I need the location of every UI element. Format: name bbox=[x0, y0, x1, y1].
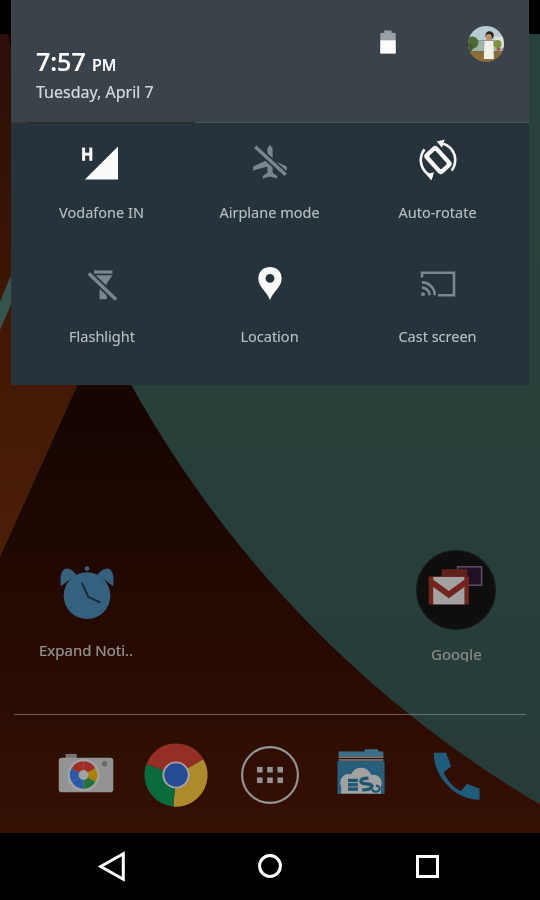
staticText: Airplane mode bbox=[219, 202, 320, 222]
staticText: 7:57 bbox=[36, 44, 86, 78]
staticText: Flashlight bbox=[69, 326, 135, 346]
button[interactable]: Location bbox=[185, 247, 353, 371]
button[interactable]: Back bbox=[82, 836, 142, 896]
button[interactable]: Auto-rotate bbox=[353, 123, 521, 247]
button[interactable]: User account bbox=[468, 26, 504, 62]
staticText: PM bbox=[92, 54, 117, 76]
button[interactable]: Chrome bbox=[140, 739, 212, 811]
button[interactable]: Google bbox=[392, 550, 520, 662]
staticText: Location bbox=[240, 326, 299, 346]
staticText: Cast screen bbox=[398, 326, 477, 346]
button[interactable]: Battery bbox=[370, 24, 406, 60]
staticText: Expand Noti.. bbox=[39, 640, 134, 660]
button[interactable]: Expand Noti.. bbox=[22, 560, 150, 668]
staticText: Google bbox=[431, 644, 482, 662]
button[interactable]: Cast screen bbox=[353, 247, 521, 371]
button[interactable]: Vodafone IN bbox=[18, 123, 185, 247]
button[interactable]: Flashlight bbox=[18, 247, 185, 371]
button[interactable]: All apps bbox=[234, 739, 306, 811]
staticText: Tuesday, April 7 bbox=[36, 81, 154, 103]
button[interactable]: Recent apps bbox=[397, 836, 457, 896]
button[interactable]: Home bbox=[240, 836, 300, 896]
staticText: Auto-rotate bbox=[398, 202, 477, 222]
staticText: Vodafone IN bbox=[59, 202, 144, 222]
button[interactable]: ES File Explorer bbox=[325, 739, 397, 811]
button[interactable]: Phone bbox=[420, 739, 492, 811]
button[interactable]: Airplane mode bbox=[185, 123, 353, 247]
button[interactable]: Camera bbox=[50, 739, 122, 811]
